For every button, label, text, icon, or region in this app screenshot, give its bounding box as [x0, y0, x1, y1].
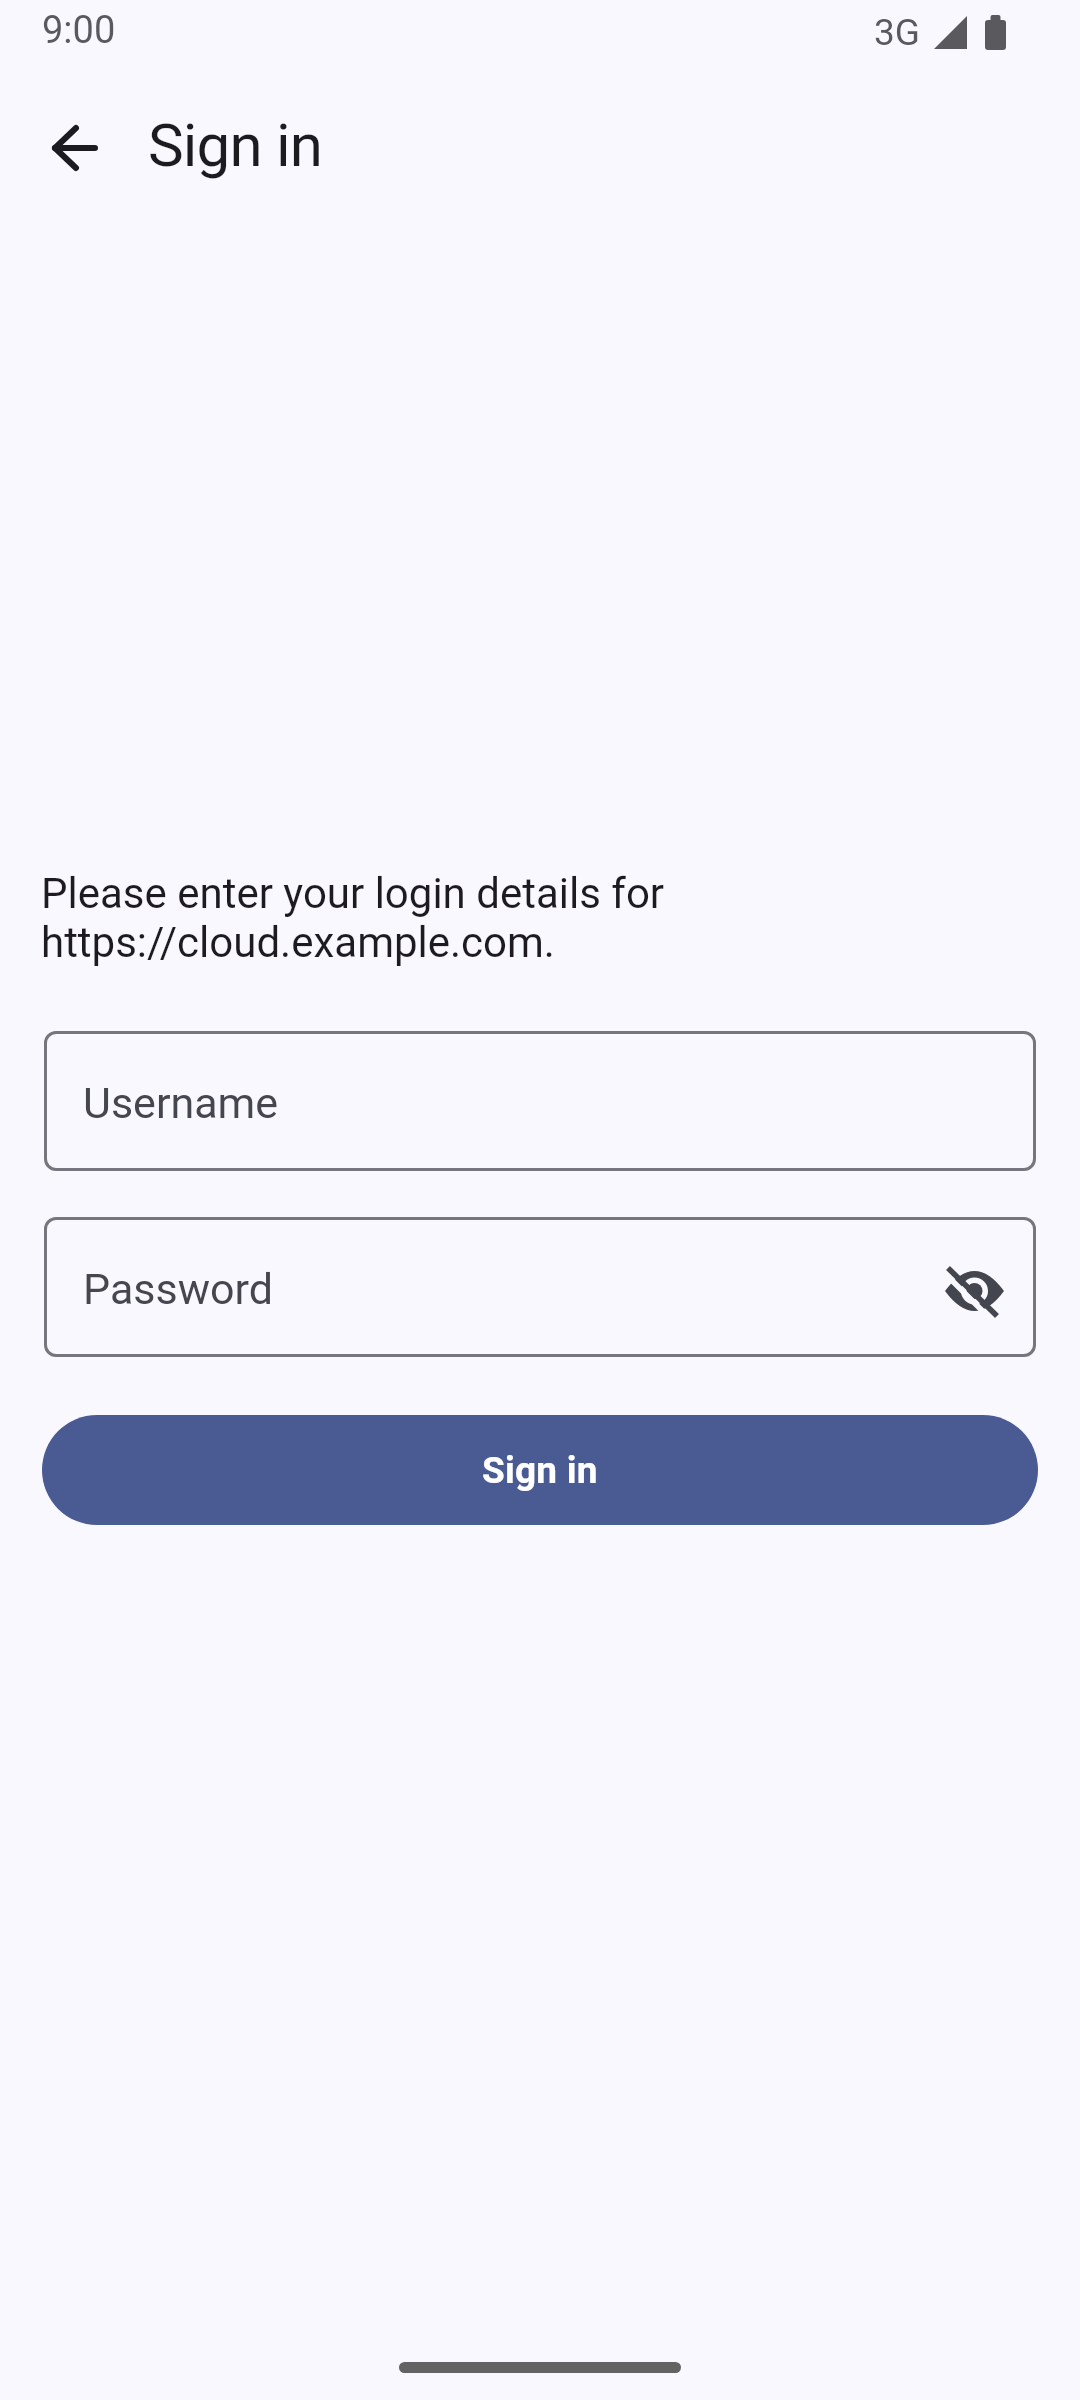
button[interactable] — [943, 1261, 1006, 1324]
button[interactable]: Username — [44, 1031, 1036, 1171]
staticText: Please enter your login details for http… — [41, 869, 665, 967]
button[interactable]: Password — [44, 1217, 1036, 1357]
button[interactable]: Sign in — [42, 1415, 1038, 1525]
staticText: Username — [83, 1078, 279, 1128]
staticText: Sign in — [482, 1449, 598, 1492]
staticText: Password — [83, 1264, 273, 1314]
staticText: Sign in — [148, 110, 323, 180]
staticText: 3G — [874, 11, 920, 54]
staticText: 9:00 — [42, 8, 116, 53]
button[interactable] — [33, 106, 117, 190]
